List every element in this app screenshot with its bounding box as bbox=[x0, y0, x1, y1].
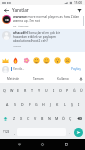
button[interactable]: X bbox=[18, 111, 25, 125]
button[interactable]: Emoji reaction bbox=[42, 56, 50, 64]
button[interactable]: Back bbox=[15, 140, 24, 149]
button[interactable]: Send bbox=[74, 128, 83, 137]
button[interactable]: Emoji reaction bbox=[63, 56, 71, 64]
button[interactable]: Ö bbox=[60, 111, 67, 125]
staticText: R bbox=[24, 88, 27, 93]
button[interactable]: V bbox=[32, 111, 39, 125]
staticText: Ç bbox=[69, 116, 72, 121]
button[interactable]: wwwww more normal players as how Zidan w… bbox=[0, 14, 85, 29]
staticText: 15:00 bbox=[74, 1, 83, 5]
button[interactable]: Emoji reaction bbox=[32, 56, 40, 64]
staticText: Kullanıcı bbox=[57, 77, 70, 81]
button[interactable]: Emoji reaction bbox=[53, 56, 61, 64]
staticText: , bbox=[14, 130, 15, 135]
button[interactable]: K bbox=[54, 97, 61, 111]
button[interactable]: Recent apps bbox=[62, 140, 71, 149]
staticText: Paylaş bbox=[71, 67, 81, 71]
button[interactable]: Backspace bbox=[74, 111, 85, 125]
button[interactable]: ?123 bbox=[0, 125, 13, 139]
staticText: afsa.sdfrl Sonuçlarıd en çok bir hazarda… bbox=[13, 31, 63, 43]
button[interactable]: Home bbox=[38, 140, 47, 149]
button[interactable]: J bbox=[47, 97, 54, 111]
staticText: C bbox=[27, 116, 30, 121]
button[interactable]: Emoji reaction bbox=[22, 56, 30, 64]
button[interactable]: Ç bbox=[67, 111, 74, 125]
button[interactable]: Ğ bbox=[71, 83, 78, 97]
button[interactable]: Voice input bbox=[76, 74, 85, 83]
staticText: D bbox=[21, 102, 24, 107]
staticText: L bbox=[64, 102, 66, 107]
staticText: wwwww more normal players as how Zidan w… bbox=[13, 15, 82, 23]
button[interactable]: P bbox=[64, 83, 71, 97]
button[interactable]: Yanıtla bbox=[13, 44, 21, 47]
button[interactable]: M bbox=[53, 111, 60, 125]
staticText: . bbox=[69, 130, 70, 135]
staticText: Yanıtla bbox=[13, 44, 21, 47]
button[interactable]: T bbox=[29, 83, 36, 97]
staticText: H bbox=[42, 102, 45, 107]
button[interactable]: C bbox=[25, 111, 32, 125]
staticText: I bbox=[78, 102, 80, 107]
button[interactable]: N bbox=[46, 111, 53, 125]
staticText: T bbox=[31, 88, 34, 93]
button[interactable]: Z bbox=[11, 111, 18, 125]
button[interactable]: B bbox=[39, 111, 46, 125]
staticText: Z bbox=[13, 116, 16, 121]
staticText: Yanıtlar bbox=[12, 7, 29, 13]
button[interactable]: Emoji reaction bbox=[11, 56, 19, 64]
staticText: X bbox=[20, 116, 23, 121]
staticText: Yanıtla... bbox=[13, 67, 25, 71]
button[interactable]: W bbox=[8, 83, 15, 97]
staticText: Y bbox=[38, 88, 41, 93]
button[interactable]: Emoji reaction bbox=[1, 56, 9, 64]
button[interactable]: Filter bbox=[75, 6, 83, 14]
button[interactable]: H bbox=[40, 97, 47, 111]
staticText: M bbox=[55, 116, 59, 121]
button[interactable]: I bbox=[50, 83, 57, 97]
button[interactable]: E bbox=[15, 83, 22, 97]
staticText: K bbox=[56, 102, 59, 107]
button[interactable]: Ş bbox=[68, 97, 75, 111]
button[interactable]: R bbox=[22, 83, 29, 97]
button[interactable]: Q bbox=[0, 83, 8, 97]
staticText: Tamam bbox=[33, 77, 44, 81]
staticText: U bbox=[45, 88, 48, 93]
staticText: P bbox=[66, 88, 69, 93]
button[interactable]: F bbox=[26, 97, 33, 111]
button[interactable]: G bbox=[33, 97, 40, 111]
button[interactable]: afsa.sdfrl Sonuçlarıd en çok bir hazarda… bbox=[0, 29, 85, 52]
staticText: 2g · Üzerinde bbox=[13, 24, 29, 27]
button[interactable]: I bbox=[75, 97, 82, 111]
button[interactable]: Ü bbox=[78, 83, 85, 97]
staticText: Ş bbox=[71, 102, 73, 107]
button[interactable]: L bbox=[61, 97, 68, 111]
button[interactable]: A bbox=[3, 97, 11, 111]
staticText: E bbox=[17, 88, 20, 93]
staticText: Ğ bbox=[73, 88, 76, 93]
button[interactable]: Shift bbox=[0, 111, 11, 125]
button[interactable]: U bbox=[43, 83, 50, 97]
button[interactable]: O bbox=[57, 83, 64, 97]
staticText: S bbox=[14, 102, 16, 107]
staticText: Q bbox=[3, 88, 6, 93]
staticText: B bbox=[41, 116, 44, 121]
staticText: Ö bbox=[62, 116, 65, 121]
staticText: ?123 bbox=[3, 130, 10, 134]
staticText: Metinde bbox=[7, 77, 20, 81]
button[interactable]: S bbox=[11, 97, 19, 111]
button[interactable]: Period bbox=[67, 125, 71, 139]
button[interactable]: Back bbox=[2, 6, 10, 14]
staticText: G bbox=[35, 102, 38, 107]
staticText: F bbox=[29, 102, 31, 107]
button[interactable]: Comma bbox=[13, 125, 16, 139]
staticText: Ü bbox=[80, 88, 83, 93]
button[interactable]: Tamam bbox=[26, 74, 51, 83]
button[interactable]: Paylaş bbox=[70, 66, 82, 72]
button[interactable]: Kullanıcı bbox=[51, 74, 76, 83]
button[interactable]: Metinde bbox=[0, 74, 26, 83]
staticText: J bbox=[50, 102, 52, 107]
button[interactable]: D bbox=[19, 97, 26, 111]
button[interactable]: Y bbox=[36, 83, 43, 97]
staticText: I bbox=[53, 88, 55, 93]
